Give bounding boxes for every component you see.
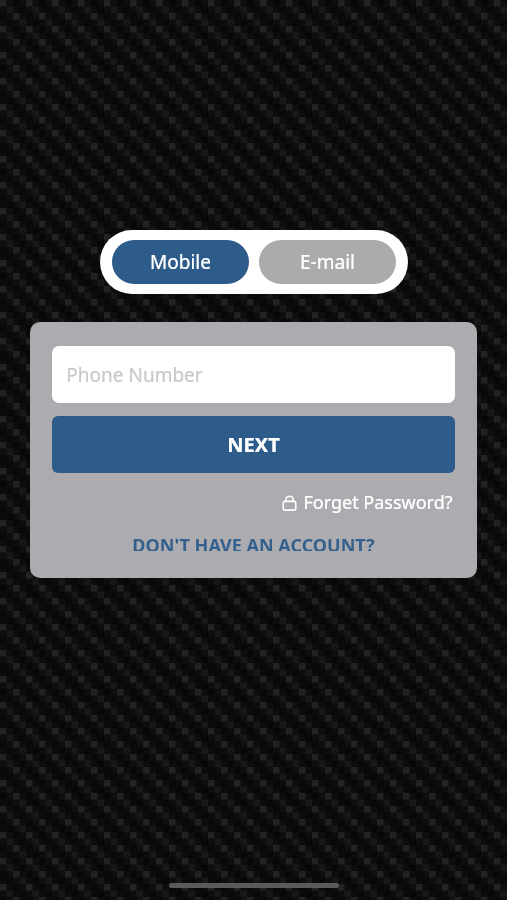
staticText: Mobile: [150, 249, 211, 275]
staticText: Forget Password?: [303, 490, 453, 515]
button[interactable]: Forget Password?: [278, 487, 455, 518]
button[interactable]: NEXT: [52, 416, 455, 473]
button[interactable]: DON'T HAVE AN ACCOUNT?: [52, 530, 455, 554]
button[interactable]: E-mail: [259, 240, 396, 284]
staticText: Phone Number: [66, 362, 203, 388]
button[interactable]: Phone Number: [52, 346, 455, 403]
staticText: NEXT: [227, 431, 280, 458]
staticText: DON'T HAVE AN ACCOUNT?: [132, 533, 375, 551]
button[interactable]: Mobile: [112, 240, 249, 284]
staticText: E-mail: [300, 249, 355, 275]
